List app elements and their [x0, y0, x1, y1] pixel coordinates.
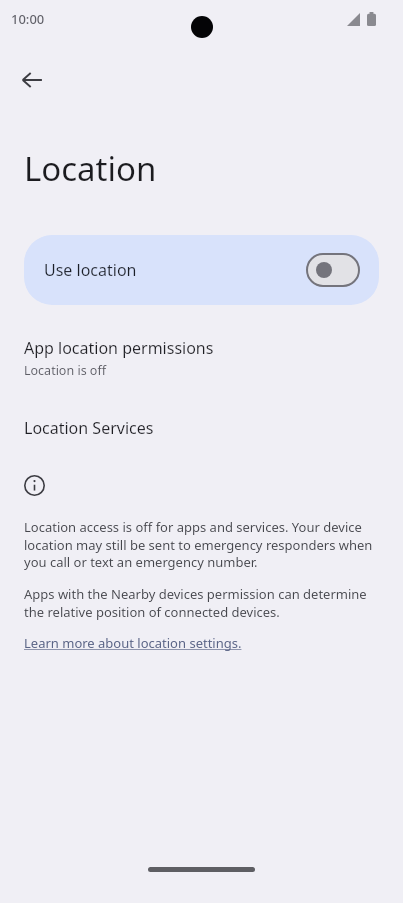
- staticText: Use location: [44, 259, 307, 281]
- staticText: Location is off: [24, 362, 107, 379]
- button[interactable]: Use location: [24, 235, 379, 305]
- staticText: 10:00: [11, 10, 45, 28]
- staticText: Location access is off for apps and serv…: [24, 518, 379, 571]
- button[interactable]: App location permissions: [0, 335, 403, 381]
- button[interactable]: Learn more about location settings.: [24, 634, 242, 652]
- staticText: App location permissions: [24, 337, 214, 359]
- staticText: Apps with the Nearby devices permission …: [24, 585, 379, 621]
- button[interactable]: Location Services: [0, 415, 403, 441]
- button[interactable]: Back: [8, 56, 56, 104]
- staticText: Location: [24, 146, 157, 191]
- staticText: Learn more about location settings.: [24, 634, 242, 652]
- staticText: Location Services: [24, 417, 154, 439]
